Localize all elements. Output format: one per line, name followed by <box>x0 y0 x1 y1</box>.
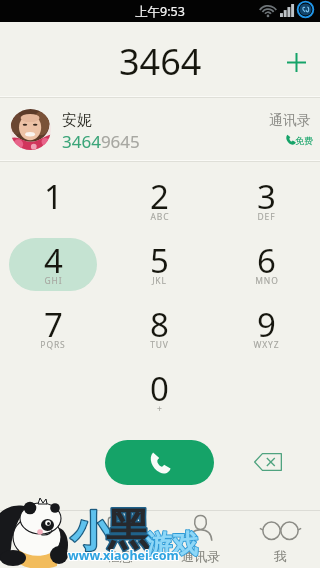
staticText: 34649645 <box>62 130 140 153</box>
staticText: 4 <box>44 238 63 283</box>
staticText: 8 <box>150 302 169 347</box>
button[interactable]: Delete <box>243 437 292 486</box>
staticText: 电话 <box>27 548 53 564</box>
staticText: 小 <box>71 507 112 559</box>
staticText: WXYZ <box>253 339 280 351</box>
staticText: 安妮 <box>62 111 92 130</box>
button[interactable]: 3 <box>213 165 320 229</box>
staticText: + <box>157 403 163 415</box>
staticText: 9 <box>257 302 276 347</box>
staticText: ABC <box>150 211 170 223</box>
button[interactable]: 通讯录 <box>160 510 240 568</box>
staticText: TUV <box>150 339 169 351</box>
button[interactable]: 8 <box>106 293 213 357</box>
staticText: 6 <box>257 238 276 283</box>
staticText: 通讯录 <box>269 112 311 130</box>
staticText: 5 <box>150 238 169 283</box>
staticText: 7 <box>44 302 63 347</box>
staticText: 游戏 <box>146 528 198 561</box>
staticText: 信息 <box>107 548 133 564</box>
staticText: 3464 <box>119 37 202 86</box>
staticText: 黑 <box>106 503 150 558</box>
staticText: www.xiaohei.com <box>68 547 179 564</box>
staticText: 0 <box>150 366 169 411</box>
button[interactable]: 信息 <box>80 510 160 568</box>
button[interactable]: 7 <box>0 293 106 357</box>
button[interactable]: 安妮 <box>0 97 320 161</box>
button[interactable]: Add contact <box>270 36 320 88</box>
staticText: 通讯录 <box>181 548 220 564</box>
staticText: 上午9:53 <box>135 3 185 20</box>
staticText: PQRS <box>40 339 66 351</box>
staticText: 我 <box>274 548 287 564</box>
button[interactable]: 6 <box>213 229 320 293</box>
staticText: 小 <box>71 507 112 559</box>
staticText: 2 <box>150 174 169 219</box>
staticText: 免费 <box>295 135 313 146</box>
button[interactable]: 0 <box>106 357 213 421</box>
button[interactable]: 2 <box>106 165 213 229</box>
staticText: GHI <box>44 275 63 287</box>
button[interactable]: 电话 <box>0 510 80 568</box>
staticText: www.xiaohei.com <box>68 547 179 564</box>
staticText: 1 <box>44 174 63 219</box>
button[interactable]: 我 <box>240 510 320 568</box>
button[interactable]: Call <box>105 440 214 485</box>
button[interactable]: 4 <box>0 229 106 293</box>
staticText: 黑 <box>106 503 150 558</box>
button[interactable]: 1 <box>0 165 106 229</box>
staticText: MNO <box>255 275 279 287</box>
staticText: DEF <box>257 211 276 223</box>
button[interactable]: 9 <box>213 293 320 357</box>
staticText: 3 <box>257 174 276 219</box>
staticText: 游戏 <box>146 528 198 561</box>
staticText: JKL <box>152 275 167 287</box>
button[interactable]: 5 <box>106 229 213 293</box>
